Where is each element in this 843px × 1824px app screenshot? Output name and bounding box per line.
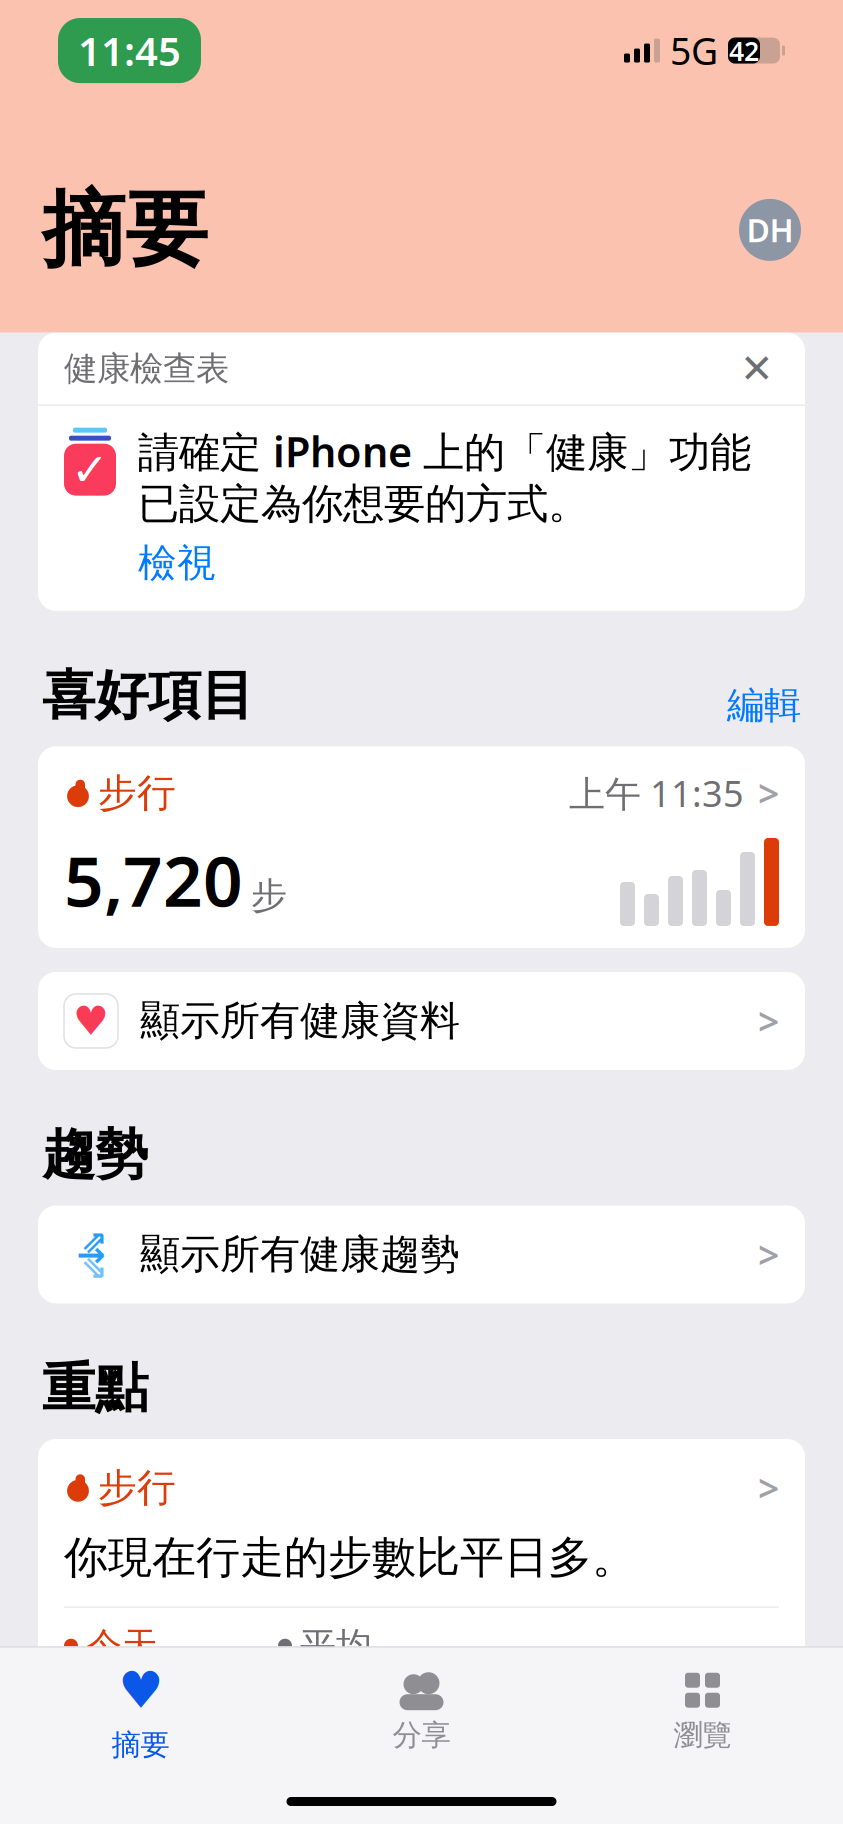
button[interactable]: ♥ — [0, 1647, 281, 1763]
button[interactable]: 編輯 — [727, 682, 801, 728]
button[interactable]: ✓ — [38, 406, 805, 611]
staticText: > — [758, 996, 779, 1046]
staticText: 重點 — [42, 1355, 148, 1421]
staticText: ✓ — [71, 444, 109, 495]
staticText: DH — [746, 209, 793, 251]
staticText: 今天 — [86, 1624, 158, 1668]
staticText: 分享 — [392, 1717, 450, 1753]
staticText: > — [758, 768, 779, 818]
button[interactable]: 步行 — [38, 746, 805, 948]
staticText: > — [758, 1230, 779, 1279]
staticText: 你現在行走的步數比平日多。 — [64, 1531, 636, 1585]
staticText: ⇗ — [80, 1223, 107, 1260]
button[interactable]: ♥ — [38, 972, 805, 1070]
staticText: 5G — [670, 26, 718, 75]
button[interactable]: Profile — [739, 199, 801, 261]
staticText: 檢視 — [138, 539, 216, 587]
staticText: > — [758, 1463, 779, 1513]
staticText: 步行 — [98, 769, 176, 817]
button[interactable]: ⇗ — [38, 1205, 805, 1303]
staticText: 摘要 — [111, 1727, 169, 1763]
staticText: 顯示所有健康資料 — [140, 996, 460, 1045]
button[interactable]: Close — [735, 347, 779, 391]
button[interactable]: 步行 — [38, 1439, 805, 1694]
staticText: ⇘ — [80, 1249, 107, 1286]
staticText: 健康檢查表 — [64, 348, 229, 389]
staticText: ♥ — [118, 1661, 163, 1719]
staticText: 11:45 — [78, 24, 181, 77]
staticText: 請確定 iPhone 上的「健康」功能已設定為你想要的方式。 — [138, 424, 751, 529]
staticText: 編輯 — [727, 682, 801, 728]
staticText: 喜好項目 — [42, 663, 254, 728]
staticText: ✕ — [740, 346, 774, 391]
staticText: 步 — [251, 874, 287, 918]
button[interactable]: 瀏覽 — [562, 1657, 843, 1753]
staticText: 上午 11:35 — [569, 769, 744, 817]
staticText: 平均 — [300, 1624, 372, 1668]
staticText: 摘要 — [42, 179, 208, 281]
staticText: ♥ — [73, 998, 109, 1044]
staticText: 趨勢 — [42, 1122, 148, 1187]
staticText: 顯示所有健康趨勢 — [140, 1230, 460, 1279]
staticText: 步行 — [98, 1464, 176, 1511]
button[interactable]: 分享 — [281, 1657, 562, 1753]
staticText: 5,720 — [64, 834, 243, 926]
staticText: 瀏覽 — [673, 1717, 731, 1753]
staticText: 42 — [729, 33, 759, 68]
staticText: → — [76, 1235, 105, 1274]
